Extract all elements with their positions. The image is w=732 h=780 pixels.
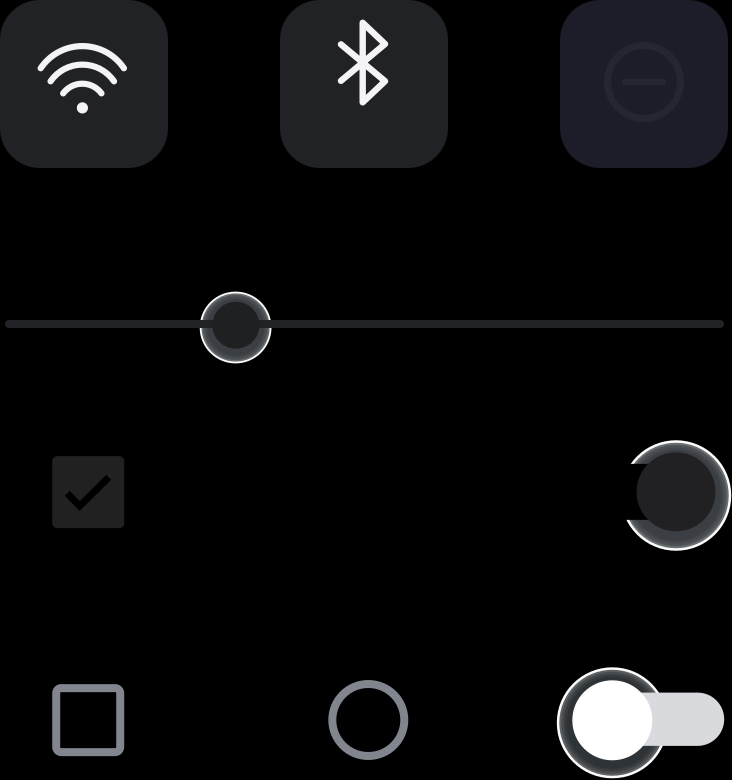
button[interactable]: Switch, off	[0, 0, 732, 780]
button[interactable]: Checkbox, checked	[52, 456, 124, 528]
button[interactable]: Do Not Disturb	[560, 0, 728, 168]
button[interactable]: Brightness slider	[0, 0, 732, 780]
button[interactable]: Wi-Fi	[0, 0, 168, 168]
button[interactable]: Checkbox, unchecked	[52, 684, 124, 756]
button[interactable]: Radio button	[328, 680, 408, 760]
button[interactable]: Switch, on	[0, 0, 732, 780]
button[interactable]: Bluetooth	[280, 0, 448, 168]
